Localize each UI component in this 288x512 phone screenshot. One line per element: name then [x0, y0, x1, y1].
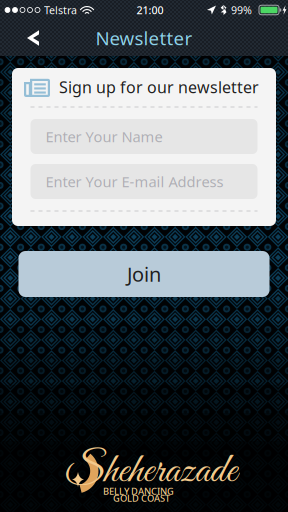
button[interactable]: Enter Your Name — [30, 119, 257, 154]
staticText: BELLY DANCING — [103, 485, 174, 497]
staticText: 21:00 — [136, 3, 163, 17]
button[interactable]: Back — [0, 20, 53, 56]
staticText: Enter Your E-mail Address — [45, 172, 223, 191]
staticText: Sheherazade — [64, 445, 237, 498]
staticText: Join — [127, 261, 161, 287]
staticText: Enter Your Name — [45, 127, 162, 146]
staticText: Newsletter — [95, 26, 192, 50]
staticText: Telstra — [44, 3, 77, 17]
staticText: GOLD COAST — [113, 492, 170, 504]
button[interactable]: Join — [18, 251, 269, 297]
staticText: Sign up for our newsletter — [59, 76, 259, 98]
staticText: 99% — [231, 3, 252, 17]
button[interactable]: Enter Your E-mail Address — [30, 164, 257, 199]
